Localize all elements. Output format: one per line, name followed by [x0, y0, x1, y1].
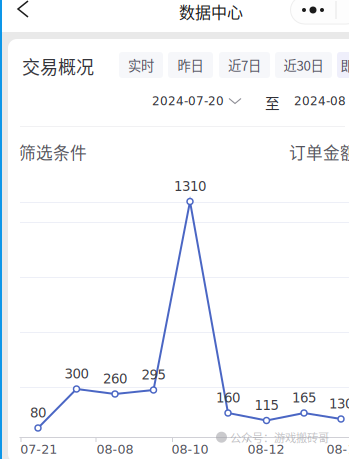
staticText: 08-12 [247, 442, 284, 457]
button[interactable]: Back [0, 0, 42, 31]
staticText: 2024-07-20 [152, 94, 224, 108]
staticText: 115 [254, 397, 278, 413]
staticText: 即 [340, 55, 349, 75]
staticText: 130 [329, 396, 349, 411]
staticText: 2024-08 [294, 94, 346, 108]
button[interactable]: 实时 [119, 52, 163, 78]
staticText: 公众号：游戏搬砖哥 [230, 429, 329, 445]
staticText: 300 [64, 366, 88, 381]
staticText: 实时 [128, 55, 154, 75]
button[interactable]: 近30日 [275, 52, 332, 78]
button[interactable]: 即 [337, 52, 349, 78]
staticText: 07-21 [20, 442, 57, 457]
button[interactable]: 昨日 [168, 52, 213, 78]
staticText: 08-10 [171, 442, 208, 457]
button[interactable]: 2024-08 [294, 89, 346, 113]
staticText: 交易概况 [22, 53, 94, 79]
button[interactable]: More [290, 0, 335, 24]
staticText: 160 [216, 390, 240, 405]
staticText: 近30日 [283, 55, 323, 75]
staticText: 08-1 [326, 442, 349, 457]
button[interactable]: 订单金额 [289, 134, 349, 170]
staticText: 筛选条件 [19, 140, 87, 164]
staticText: 80 [30, 405, 46, 420]
button[interactable]: 筛选条件 [19, 134, 87, 170]
button[interactable]: 近7日 [219, 52, 270, 78]
staticText: 订单金额 [289, 140, 349, 164]
staticText: 1310 [174, 178, 206, 194]
staticText: 昨日 [177, 55, 203, 75]
staticText: 165 [292, 390, 316, 405]
staticText: 至 [265, 92, 280, 113]
staticText: 260 [103, 371, 127, 386]
button[interactable]: Close [336, 0, 349, 24]
staticText: 295 [141, 367, 165, 382]
staticText: 数据中心 [179, 0, 243, 23]
button[interactable]: 2024-07-20 [152, 89, 241, 113]
staticText: 08-08 [96, 442, 133, 457]
staticText: 近7日 [228, 55, 261, 75]
